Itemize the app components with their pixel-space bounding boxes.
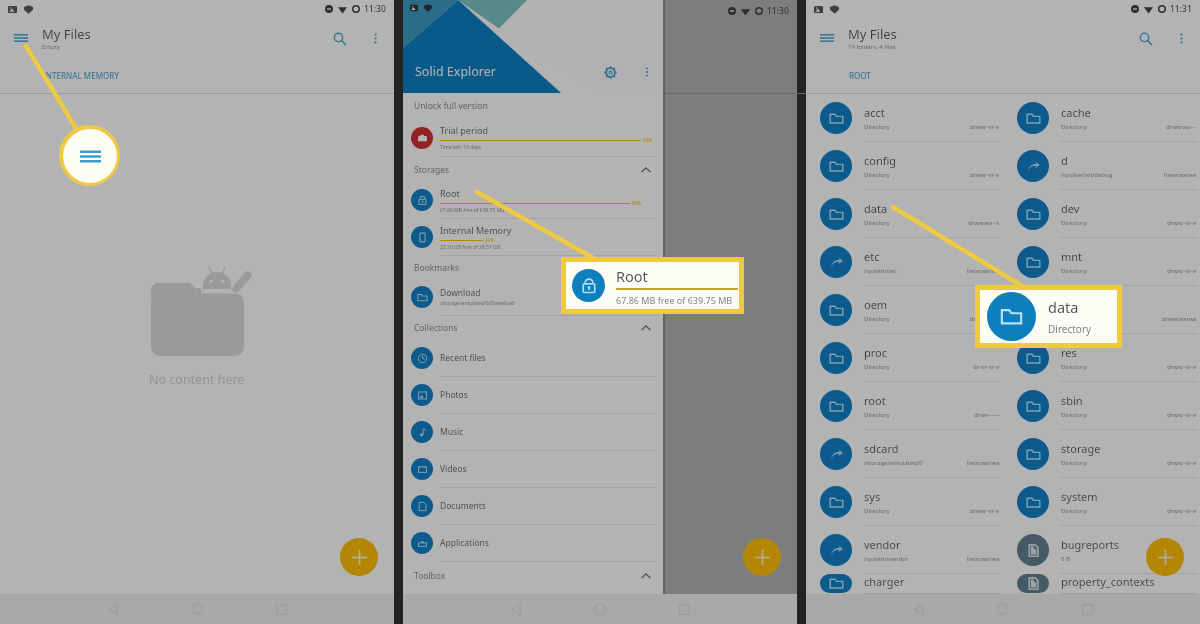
button[interactable]: Search: [326, 25, 352, 51]
button[interactable]: data: [806, 190, 1003, 238]
button[interactable]: proc: [806, 334, 1003, 382]
button[interactable]: res: [1003, 334, 1200, 382]
button[interactable]: storage: [1003, 430, 1200, 478]
staticText: drwxr-xr-x: [1167, 411, 1197, 419]
staticText: cache: [1061, 105, 1091, 120]
staticText: Directory: [1061, 123, 1087, 131]
staticText: Recent files: [440, 352, 486, 364]
staticText: Directory: [1061, 267, 1087, 275]
staticText: oem: [864, 297, 888, 312]
staticText: Directory: [864, 363, 890, 371]
button[interactable]: Documents: [403, 488, 663, 525]
button[interactable]: bugreports: [1003, 526, 1200, 574]
button[interactable]: Videos: [403, 451, 663, 488]
staticText: No content here: [149, 371, 245, 388]
button[interactable]: Photos: [403, 377, 663, 414]
button[interactable]: Settings: [598, 60, 622, 84]
staticText: drwxr-xr-x: [1167, 267, 1197, 275]
button[interactable]: sdcard: [806, 430, 1003, 478]
button[interactable]: Add: [1146, 538, 1184, 576]
button[interactable]: cache: [1003, 94, 1200, 142]
staticText: Empty: [42, 43, 60, 51]
staticText: /storage/emulated/0/Download: [440, 300, 515, 307]
button[interactable]: config: [806, 142, 1003, 190]
button[interactable]: d: [1003, 142, 1200, 190]
button[interactable]: More options: [635, 60, 659, 84]
button[interactable]: Internal Memory: [403, 219, 663, 256]
staticText: data: [864, 201, 888, 216]
staticText: lrwxrwxrwx: [967, 267, 1000, 275]
button[interactable]: charger: [806, 574, 1003, 594]
button[interactable]: vendor: [806, 526, 1003, 574]
staticText: proc: [864, 345, 888, 360]
button[interactable]: etc: [806, 238, 1003, 286]
button[interactable]: Root: [403, 182, 663, 219]
staticText: drwxr-xr-x: [1167, 459, 1197, 467]
staticText: Bookmarks: [414, 262, 460, 274]
button[interactable]: sbin: [1003, 382, 1200, 430]
staticText: 80%: [632, 200, 641, 206]
staticText: 67.86 MB free of 639.75 MB: [616, 294, 733, 306]
staticText: d: [1061, 153, 1068, 168]
staticText: property_contexts: [1061, 574, 1155, 589]
staticText: drwxr-xr-x: [970, 171, 1000, 179]
button[interactable]: Recent files: [403, 340, 663, 377]
staticText: My Files: [848, 25, 897, 43]
staticText: Directory: [1061, 411, 1087, 419]
staticText: Applications: [440, 537, 489, 549]
button[interactable]: root: [806, 382, 1003, 430]
button[interactable]: oem: [806, 286, 1003, 334]
staticText: storage: [1061, 441, 1101, 456]
button[interactable]: Add: [743, 538, 781, 576]
button[interactable]: More options: [362, 25, 388, 51]
staticText: drwxr-xr-x: [1167, 363, 1197, 371]
staticText: Directory: [864, 507, 890, 515]
button[interactable]: Open navigation drawer: [814, 25, 840, 51]
staticText: charger: [864, 574, 905, 589]
button[interactable]: Applications: [403, 525, 663, 562]
staticText: Directory: [864, 411, 890, 419]
staticText: lrwxrwxrwx: [967, 459, 1000, 467]
staticText: 11:30: [767, 5, 789, 17]
staticText: /sys/kernel/debug: [1061, 171, 1113, 179]
button[interactable]: Music: [403, 414, 663, 451]
staticText: vendor: [864, 537, 901, 552]
staticText: 67.86 MB free of 639.75 MB: [440, 207, 505, 214]
button[interactable]: Trial period: [403, 119, 663, 157]
button[interactable]: sys: [806, 478, 1003, 526]
staticText: Time left: 13 days: [440, 144, 481, 151]
button[interactable]: Download: [403, 279, 663, 316]
button[interactable]: Add: [340, 538, 378, 576]
staticText: dev: [1061, 201, 1080, 216]
staticText: 19 folders, 4 files: [848, 43, 896, 51]
staticText: Directory: [864, 171, 890, 179]
staticText: config: [864, 153, 897, 168]
button[interactable]: dev: [1003, 190, 1200, 238]
button[interactable]: system: [1003, 478, 1200, 526]
staticText: Root: [616, 266, 648, 286]
button[interactable]: mnt: [1003, 238, 1200, 286]
staticText: lrwxrwxrwx: [967, 555, 1000, 563]
button[interactable]: property_contexts: [1003, 574, 1200, 594]
button[interactable]: Search: [1132, 25, 1158, 51]
staticText: /system/vendor: [864, 555, 909, 563]
button[interactable]: Open navigation drawer: [8, 25, 34, 51]
staticText: drwxr-xr-x: [1167, 219, 1197, 227]
button[interactable]: acct: [806, 94, 1003, 142]
staticText: data: [1048, 297, 1079, 317]
staticText: Directory: [1048, 322, 1092, 336]
button[interactable]: More options: [1168, 25, 1194, 51]
button[interactable]: odm: [1003, 286, 1200, 334]
staticText: 22.50 GB free of 28.57 GB: [440, 244, 500, 251]
staticText: 20%: [485, 237, 494, 243]
